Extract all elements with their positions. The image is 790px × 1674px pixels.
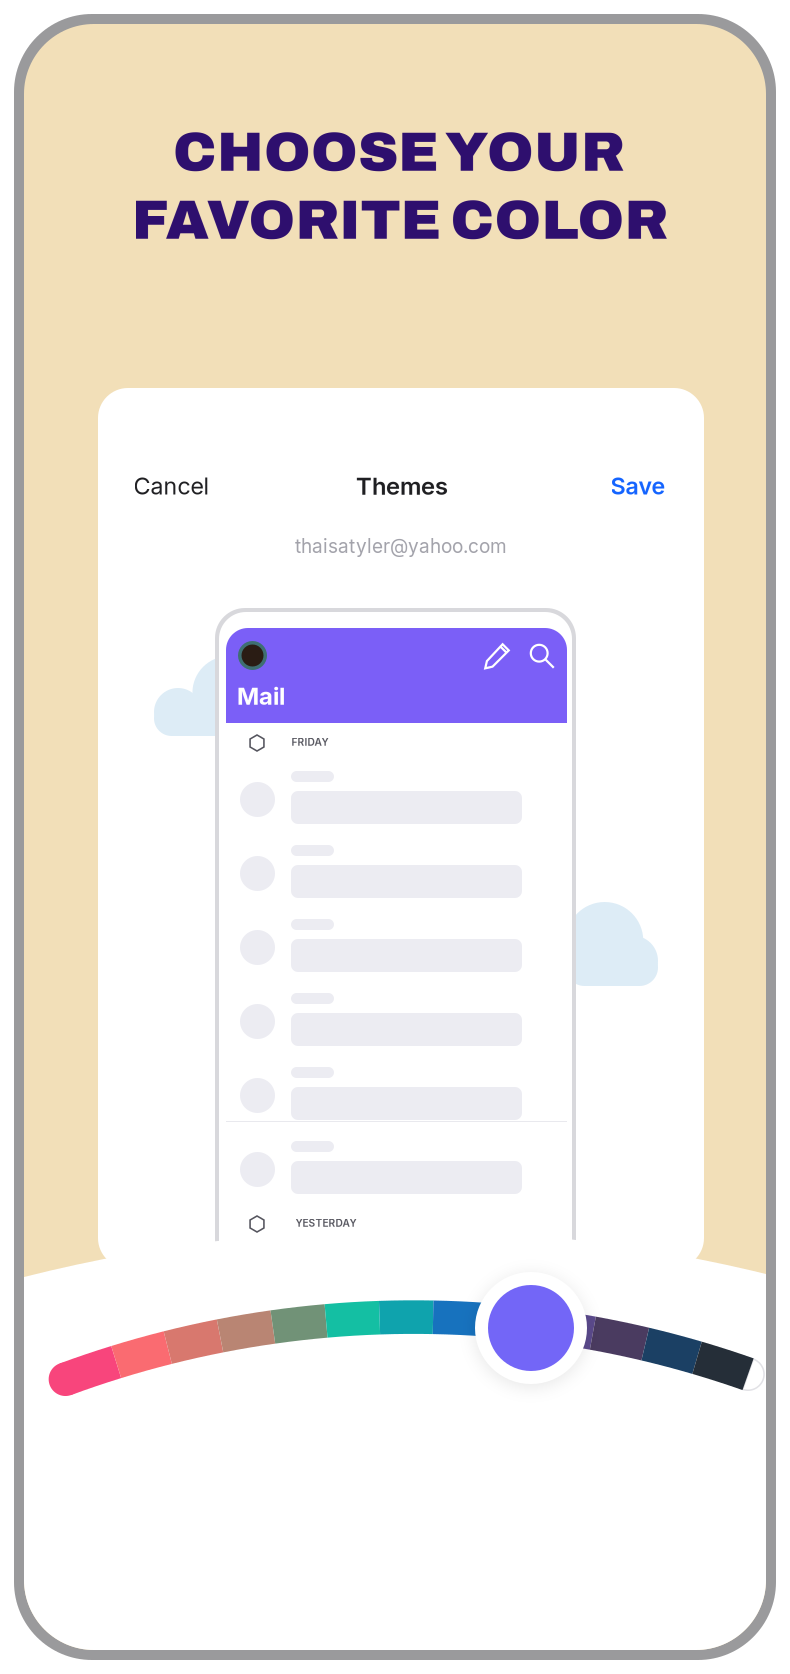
staticText: CHOOSE YOUR — [173, 121, 625, 182]
staticText: Save — [610, 472, 665, 500]
button[interactable]: Cancel — [133, 472, 208, 500]
staticText: Themes — [356, 471, 448, 500]
staticText: FAVORITE COLOR — [131, 189, 668, 250]
staticText: thaisatyler@yahoo.com — [295, 534, 507, 557]
staticText: Mail — [237, 681, 285, 710]
button[interactable]: Compose — [0, 0, 790, 1674]
button[interactable]: Search — [0, 0, 790, 1674]
staticText: FRIDAY — [291, 736, 328, 748]
button[interactable]: Selected colour — [0, 0, 790, 1674]
button[interactable]: Save — [610, 472, 665, 500]
staticText: YESTERDAY — [295, 1217, 356, 1229]
staticText: Cancel — [133, 472, 208, 500]
